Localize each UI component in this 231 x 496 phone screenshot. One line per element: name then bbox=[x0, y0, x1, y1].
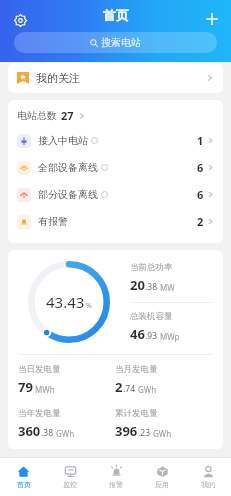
staticText: 报警 bbox=[109, 480, 123, 489]
staticText: GWh bbox=[153, 428, 172, 439]
staticText: 当年发电量 bbox=[18, 408, 61, 419]
staticText: 首页 bbox=[17, 480, 31, 489]
staticText: .93 bbox=[145, 330, 158, 342]
staticText: 46 bbox=[130, 325, 145, 343]
button[interactable]: 电站总数 bbox=[17, 108, 86, 123]
staticText: 当月发电量 bbox=[115, 364, 158, 375]
button[interactable]: 我的关注 bbox=[8, 63, 223, 93]
staticText: .23 bbox=[138, 427, 151, 439]
staticText: .74 bbox=[123, 383, 136, 395]
staticText: GWh bbox=[56, 428, 75, 439]
staticText: 搜索电站 bbox=[101, 36, 141, 49]
staticText: 当前总功率 bbox=[130, 262, 173, 273]
staticText: 我的关注 bbox=[36, 71, 80, 85]
staticText: .38 bbox=[145, 281, 158, 293]
staticText: 79 bbox=[18, 378, 33, 396]
staticText: 2 bbox=[197, 214, 204, 229]
button[interactable]: 全部设备离线 bbox=[17, 154, 214, 181]
staticText: 接入中电站 bbox=[38, 134, 88, 147]
staticText: 396 bbox=[115, 422, 138, 440]
staticText: MWp bbox=[160, 331, 180, 342]
button[interactable]: Settings bbox=[8, 8, 32, 32]
staticText: 累计发电量 bbox=[115, 408, 158, 419]
staticText: 应用 bbox=[155, 480, 169, 489]
staticText: 有报警 bbox=[38, 215, 68, 228]
button[interactable]: Add station bbox=[201, 8, 223, 30]
button[interactable]: 接入中电站 bbox=[17, 127, 214, 154]
staticText: 当日发电量 bbox=[18, 364, 61, 375]
staticText: 监控 bbox=[63, 480, 77, 489]
staticText: MW bbox=[160, 282, 175, 293]
staticText: 电站总数 bbox=[17, 109, 57, 122]
staticText: 全部设备离线 bbox=[38, 161, 98, 174]
button[interactable]: 应用 bbox=[139, 458, 185, 496]
button[interactable]: 有报警 bbox=[17, 208, 214, 235]
button[interactable]: 部分设备离线 bbox=[17, 181, 214, 208]
staticText: 1 bbox=[197, 133, 204, 148]
staticText: 6 bbox=[197, 187, 204, 202]
staticText: MWh bbox=[35, 384, 55, 395]
staticText: 360 bbox=[18, 422, 41, 440]
staticText: 20 bbox=[130, 276, 145, 294]
button[interactable]: 监控 bbox=[47, 458, 93, 496]
staticText: 部分设备离线 bbox=[38, 188, 98, 201]
staticText: 总装机容量 bbox=[130, 311, 173, 322]
button[interactable]: 报警 bbox=[93, 458, 139, 496]
button[interactable]: 我的 bbox=[185, 458, 231, 496]
staticText: % bbox=[86, 301, 92, 311]
staticText: 我的 bbox=[201, 480, 215, 489]
staticText: GWh bbox=[138, 384, 157, 395]
staticText: 6 bbox=[197, 160, 204, 175]
staticText: 27 bbox=[61, 108, 74, 123]
staticText: .38 bbox=[41, 427, 54, 439]
button[interactable]: 首页 bbox=[0, 458, 47, 496]
staticText: 43.43 bbox=[46, 292, 85, 312]
button[interactable]: 搜索电站 bbox=[14, 32, 217, 53]
staticText: 2 bbox=[115, 378, 123, 396]
staticText: 首页 bbox=[103, 7, 129, 23]
